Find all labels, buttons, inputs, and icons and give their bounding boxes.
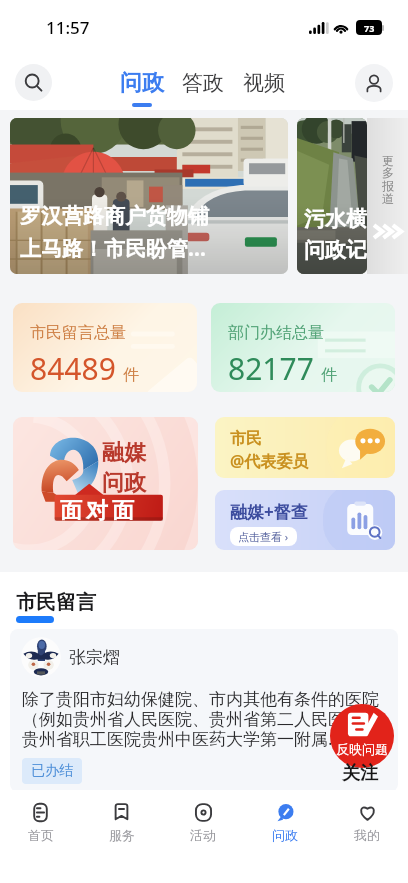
staticText: 我的 (354, 827, 380, 843)
staticText: 件 (321, 365, 337, 385)
staticText: 污水横 (304, 206, 367, 232)
button[interactable]: 答政 (182, 70, 224, 96)
staticText: 82177 (228, 348, 314, 389)
button[interactable]: 视频 (243, 70, 285, 96)
staticText: 点击查看 › (238, 529, 289, 544)
staticText: 反映问题 (336, 741, 388, 757)
staticText: 问政 (272, 827, 298, 843)
button[interactable]: 问政 (120, 69, 164, 97)
staticText: 市民留言 (16, 590, 96, 615)
button[interactable]: 罗汉营路商户货物铺 (10, 118, 288, 274)
button[interactable]: 部门办结总量 (211, 303, 395, 392)
staticText: 答政 (182, 70, 224, 96)
button[interactable]: 融媒+督查 (215, 490, 395, 550)
staticText: 面对面 (58, 497, 136, 525)
staticText: 问政 (102, 469, 146, 497)
staticText: @代表委员 (230, 450, 309, 472)
button[interactable]: 活动 (162, 799, 244, 846)
staticText: 市民留言总量 (30, 323, 126, 343)
button[interactable]: 反映问题 (330, 704, 394, 768)
button[interactable]: 我的账户 (355, 64, 393, 102)
staticText: 上马路！市民盼管… (20, 234, 206, 263)
button[interactable]: 服务 (81, 799, 162, 846)
staticText: 活动 (190, 827, 216, 843)
button[interactable]: 市民留言总量 (13, 303, 197, 392)
staticText: 罗汉营路商户货物铺 (20, 203, 209, 229)
button[interactable]: 更多报道 (367, 118, 408, 274)
staticText: 已办结 (31, 762, 73, 780)
staticText: 部门办结总量 (228, 323, 324, 343)
staticText: 更 多 报 道 (382, 153, 394, 207)
button[interactable]: 张宗熠 (10, 629, 398, 792)
staticText: 市民 (230, 429, 262, 449)
staticText: 融媒 (102, 439, 146, 467)
staticText: 视频 (243, 70, 285, 96)
button[interactable]: 污水横 (297, 118, 367, 274)
staticText: 张宗熠 (69, 647, 120, 668)
staticText: 11:57 (46, 16, 90, 39)
button[interactable]: 问政 (244, 799, 326, 846)
staticText: 首页 (28, 827, 54, 843)
button[interactable]: 市民 (215, 417, 395, 478)
staticText: 除了贵阳市妇幼保健院、市内其他有条件的医院 （例如贵州省人民医院、贵州省第二人民… (22, 689, 379, 750)
staticText: 关注 (342, 762, 378, 785)
button[interactable]: 搜索 (15, 64, 52, 101)
staticText: 84489 (30, 348, 116, 389)
button[interactable]: 首页 (0, 799, 81, 846)
staticText: 件 (123, 365, 139, 385)
staticText: 问政记 (304, 237, 367, 263)
staticText: 73 (364, 22, 375, 34)
staticText: 融媒+督查 (230, 500, 308, 523)
button[interactable]: 融媒问政面对面 (13, 417, 198, 550)
staticText: 服务 (109, 827, 135, 843)
button[interactable]: 我的 (326, 799, 408, 846)
staticText: 问政 (120, 69, 164, 97)
